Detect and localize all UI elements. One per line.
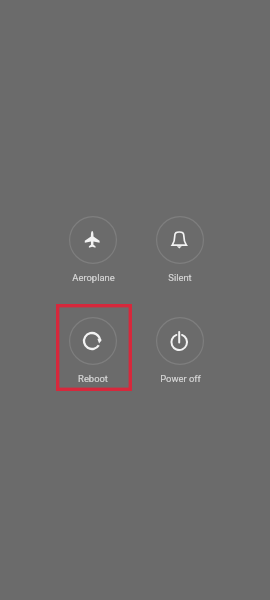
staticText: Silent [168, 272, 192, 283]
button[interactable]: Aeroplane mode [55, 204, 131, 291]
button[interactable]: Power off [142, 305, 218, 392]
staticText: Power off [160, 373, 201, 384]
button[interactable]: Reboot [55, 305, 131, 392]
staticText: Aeroplane [72, 272, 115, 283]
button[interactable]: Silent mode [142, 204, 218, 291]
staticText: Reboot [78, 373, 108, 384]
